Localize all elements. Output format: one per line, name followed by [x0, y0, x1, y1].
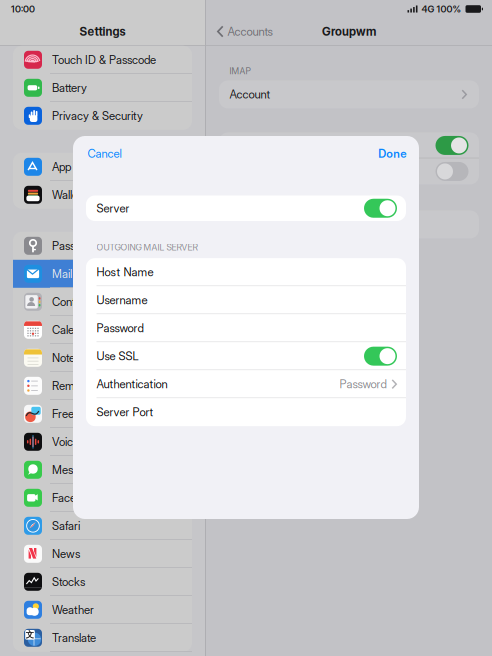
staticText: Freeform	[52, 407, 97, 421]
staticText: Use SSL	[96, 349, 138, 363]
staticText: Passwords	[52, 239, 104, 253]
button[interactable]: App Store	[13, 153, 192, 181]
staticText: Password	[339, 377, 386, 391]
staticText: Voice Memos	[52, 435, 119, 449]
staticText: Translate	[52, 631, 96, 645]
staticText: Wallet	[52, 188, 82, 202]
staticText: Password	[96, 321, 143, 335]
button[interactable]: Cancel	[87, 147, 121, 160]
button[interactable]: Server Port	[86, 398, 406, 426]
staticText: Host Name	[96, 265, 153, 279]
button[interactable]: Authentication	[86, 370, 406, 398]
button[interactable]: Safari	[13, 512, 192, 540]
staticText: Battery	[52, 81, 87, 95]
staticText: Reminders	[52, 379, 104, 393]
button[interactable]: Mail	[13, 260, 192, 288]
button[interactable]: Stocks	[13, 568, 192, 596]
staticText: Notes	[52, 351, 80, 365]
button[interactable]: Accounts	[217, 25, 273, 38]
staticText: Safari	[52, 519, 80, 533]
button[interactable]: Notes	[13, 344, 192, 372]
staticText: App Store	[52, 160, 100, 174]
button[interactable]: Passwords	[13, 232, 192, 260]
staticText: Privacy & Security	[52, 109, 143, 123]
button[interactable]: Weather	[13, 596, 192, 624]
staticText: IMAP	[229, 66, 250, 76]
staticText: 4G 100%	[421, 3, 460, 15]
button[interactable]: Touch ID & Passcode	[13, 46, 192, 74]
staticText: 文	[25, 629, 34, 640]
staticText: Account	[229, 87, 270, 101]
staticText: Done	[378, 147, 406, 160]
button[interactable]: Voice Memos	[13, 428, 192, 456]
staticText: FaceTime	[52, 491, 100, 505]
staticText: Weather	[52, 603, 94, 617]
button[interactable]: Server	[86, 195, 406, 221]
button[interactable]: Password	[86, 314, 406, 342]
button[interactable]: Battery	[13, 74, 192, 102]
staticText: Authentication	[96, 377, 167, 391]
staticText: Mail	[52, 267, 72, 281]
button[interactable]: Use SSL	[86, 342, 406, 370]
staticText: News	[52, 547, 80, 561]
button[interactable]: Calendar	[13, 316, 192, 344]
staticText: Settings	[79, 24, 125, 39]
staticText: Touch ID & Passcode	[52, 53, 156, 67]
button[interactable]: Username	[86, 286, 406, 314]
staticText: Groupwm	[322, 24, 376, 39]
staticText: Server Port	[96, 405, 153, 419]
button[interactable]: News	[13, 540, 192, 568]
button[interactable]: Messages	[13, 456, 192, 484]
staticText: Contacts	[52, 295, 96, 309]
staticText: Messages	[52, 463, 101, 477]
staticText: Stocks	[52, 575, 85, 589]
staticText: 10:00	[11, 3, 35, 15]
button[interactable]: Done	[378, 147, 406, 160]
staticText: Username	[96, 293, 147, 307]
button[interactable]: 文	[13, 624, 192, 652]
staticText: OUTGOING MAIL SERVER	[96, 242, 198, 253]
staticText: Calendar	[52, 323, 96, 337]
button[interactable]: Privacy & Security	[13, 102, 192, 130]
staticText: Accounts	[228, 25, 273, 38]
button[interactable]: FaceTime	[13, 484, 192, 512]
staticText: Server	[96, 201, 129, 215]
staticText: Cancel	[87, 147, 121, 160]
button[interactable]: Freeform	[13, 400, 192, 428]
button[interactable]: Account	[219, 80, 479, 108]
button[interactable]: Contacts	[13, 288, 192, 316]
button[interactable]: Host Name	[86, 258, 406, 286]
button[interactable]: Wallet	[13, 181, 192, 209]
button[interactable]: Reminders	[13, 372, 192, 400]
